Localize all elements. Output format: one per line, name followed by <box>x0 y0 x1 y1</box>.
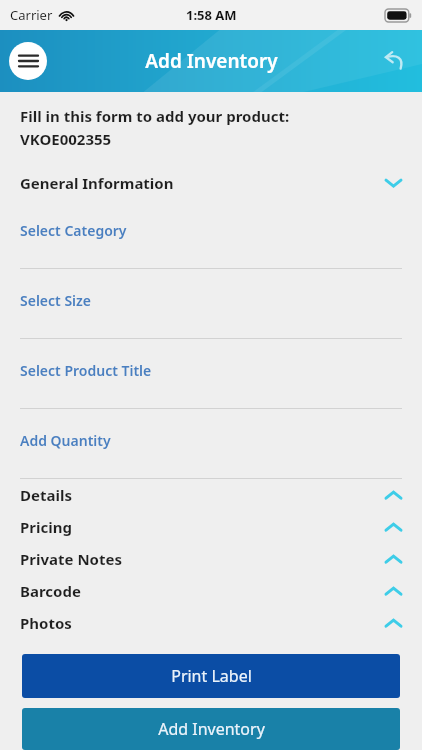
button[interactable]: Details <box>0 479 422 511</box>
staticText: Carrier <box>10 6 53 24</box>
staticText: Select Category <box>20 221 127 240</box>
button[interactable]: Add Quantity <box>0 409 422 479</box>
staticText: Barcode <box>20 581 81 601</box>
button[interactable]: Private Notes <box>0 543 422 575</box>
button[interactable]: Select Category <box>0 199 422 269</box>
staticText: Private Notes <box>20 549 122 569</box>
staticText: Pricing <box>20 517 72 537</box>
staticText: Fill in this form to add your product: <box>20 106 290 126</box>
staticText: Details <box>20 485 72 505</box>
button[interactable]: General Information <box>0 167 422 199</box>
staticText: Add Inventory <box>145 48 278 74</box>
button[interactable]: Back <box>376 43 412 79</box>
staticText: Photos <box>20 613 72 633</box>
button[interactable]: Select Product Title <box>0 339 422 409</box>
staticText: Select Product Title <box>20 361 152 380</box>
staticText: Print Label <box>171 665 252 687</box>
button[interactable]: Barcode <box>0 575 422 607</box>
button[interactable]: Photos <box>0 607 422 639</box>
staticText: Add Quantity <box>20 431 111 450</box>
staticText: Add Inventory <box>158 718 265 740</box>
button[interactable]: Pricing <box>0 511 422 543</box>
staticText: VKOE002355 <box>20 129 112 149</box>
button[interactable]: Select Size <box>0 269 422 339</box>
button[interactable]: Add Inventory <box>22 708 400 750</box>
staticText: Select Size <box>20 291 92 310</box>
button[interactable]: Print Label <box>22 654 400 698</box>
staticText: General Information <box>20 173 174 193</box>
button[interactable]: Menu <box>9 42 47 80</box>
staticText: 1:58 AM <box>186 6 237 24</box>
